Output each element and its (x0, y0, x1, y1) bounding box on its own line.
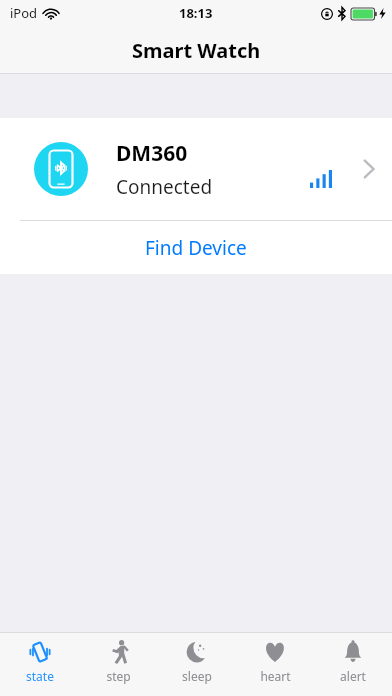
staticText: DM360 (116, 139, 188, 168)
staticText: alert (340, 668, 366, 684)
staticText: 18:13 (179, 4, 213, 22)
button[interactable]: step (79, 633, 158, 696)
button[interactable]: DM360 (0, 118, 392, 220)
staticText: heart (260, 668, 291, 684)
button[interactable]: alert (314, 633, 392, 696)
staticText: Connected (116, 174, 213, 200)
button[interactable]: heart (236, 633, 314, 696)
staticText: Smart Watch (132, 37, 261, 64)
button[interactable]: sleep (158, 633, 236, 696)
button[interactable]: Find Device (0, 221, 392, 274)
staticText: sleep (182, 668, 212, 684)
staticText: step (106, 668, 131, 684)
staticText: Find Device (145, 235, 247, 261)
staticText: state (26, 668, 54, 684)
button[interactable]: state (0, 633, 79, 696)
staticText: iPod (10, 4, 38, 22)
